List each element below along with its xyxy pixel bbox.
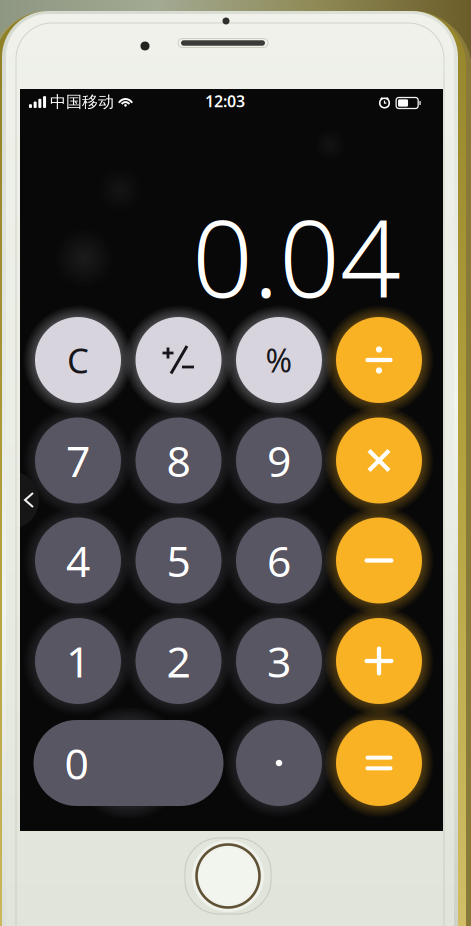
staticText: % bbox=[265, 339, 292, 381]
button[interactable]: Back bbox=[0, 471, 51, 529]
staticText: 4 bbox=[66, 532, 90, 589]
button[interactable]: Clear bbox=[23, 305, 133, 415]
staticText: 6 bbox=[267, 532, 291, 589]
button[interactable]: Plus bbox=[324, 606, 434, 716]
staticText: 5 bbox=[166, 532, 190, 589]
button[interactable]: Multiply bbox=[324, 405, 434, 515]
button[interactable]: Home bbox=[182, 833, 274, 919]
button[interactable]: 2 bbox=[123, 606, 233, 716]
staticText: 12:03 bbox=[205, 90, 245, 112]
button[interactable]: 7 bbox=[23, 405, 133, 515]
staticText: C bbox=[67, 337, 89, 383]
button[interactable]: 3 bbox=[224, 606, 334, 716]
staticText: 9 bbox=[267, 432, 291, 489]
button[interactable]: 0 bbox=[21, 708, 235, 818]
staticText: 0.04 bbox=[192, 185, 401, 327]
button[interactable]: Minus bbox=[324, 505, 434, 615]
button[interactable]: 9 bbox=[224, 405, 334, 515]
button[interactable]: Decimal point bbox=[224, 708, 334, 818]
staticText: 3 bbox=[267, 633, 291, 689]
button[interactable]: 4 bbox=[23, 505, 133, 615]
button[interactable]: Percent bbox=[224, 305, 334, 415]
button[interactable]: 6 bbox=[224, 505, 334, 615]
button[interactable]: Divide bbox=[324, 305, 434, 415]
button[interactable]: 1 bbox=[23, 606, 133, 716]
staticText: 7 bbox=[66, 432, 90, 489]
button[interactable]: 5 bbox=[123, 505, 233, 615]
staticText: 8 bbox=[166, 432, 190, 489]
button[interactable]: Plus minus bbox=[123, 305, 233, 415]
staticText: 1 bbox=[66, 633, 90, 689]
staticText: 2 bbox=[166, 633, 190, 689]
staticText: 0 bbox=[64, 735, 88, 791]
staticText: 中国移动 bbox=[50, 92, 114, 112]
button[interactable]: Equals bbox=[324, 708, 434, 818]
button[interactable]: 8 bbox=[123, 405, 233, 515]
